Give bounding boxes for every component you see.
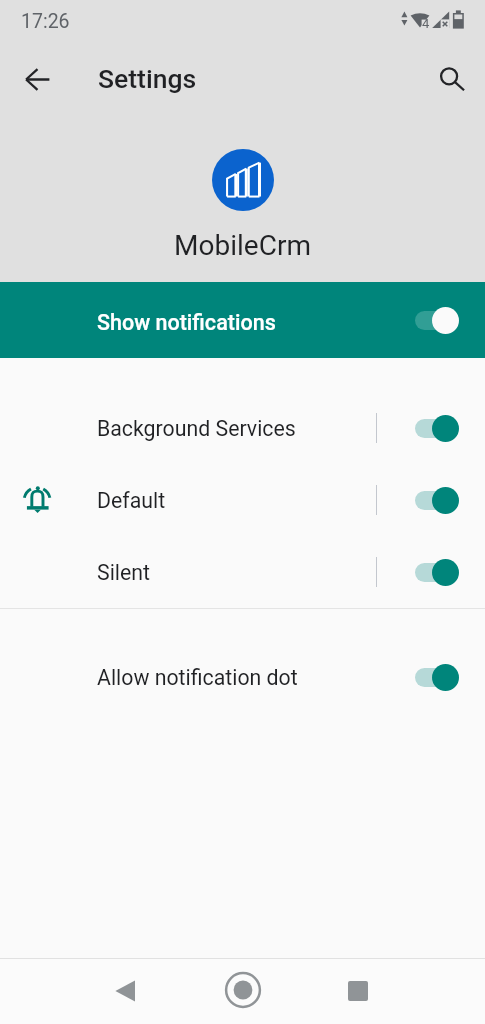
staticText: 4 — [422, 16, 430, 31]
button[interactable]: Default — [0, 464, 485, 536]
staticText: Allow notification dot — [97, 665, 298, 690]
staticText: Silent — [97, 560, 151, 585]
staticText: Default — [97, 488, 166, 513]
button[interactable]: Back — [13, 55, 61, 103]
staticText: Show notifications — [97, 310, 276, 335]
button[interactable]: Silent — [0, 536, 485, 608]
button[interactable]: Background Services — [0, 392, 485, 464]
staticText: Background Services — [97, 416, 296, 441]
button[interactable]: Home — [194, 959, 290, 1024]
staticText: Settings — [98, 63, 197, 94]
button[interactable]: Recent apps — [310, 959, 406, 1024]
button[interactable]: Show notifications — [0, 282, 485, 358]
button[interactable]: Search — [421, 54, 469, 102]
button[interactable]: Allow notification dot — [0, 641, 485, 713]
staticText: 17:26 — [21, 10, 70, 33]
staticText: MobileCrm — [174, 229, 311, 262]
button[interactable]: Back — [77, 959, 173, 1024]
